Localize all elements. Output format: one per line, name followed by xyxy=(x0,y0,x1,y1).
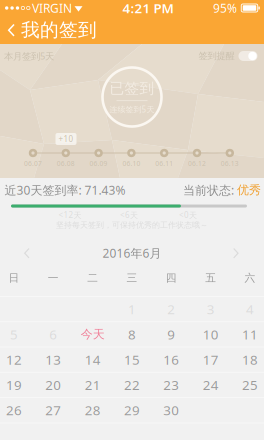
button[interactable]: 9 xyxy=(152,322,191,347)
staticText: 当前状态: xyxy=(183,182,237,198)
button[interactable]: 21 xyxy=(73,372,112,397)
staticText: 21 xyxy=(85,376,101,394)
button[interactable]: 3 xyxy=(191,296,230,321)
staticText: 11 xyxy=(242,325,258,343)
staticText: 06.07 xyxy=(24,159,42,168)
staticText: 22 xyxy=(124,376,140,394)
staticText: 三 xyxy=(126,271,137,284)
staticText: 六 xyxy=(244,271,255,284)
staticText: 近30天签到率: 71.43% xyxy=(4,182,125,198)
button[interactable]: 23 xyxy=(152,372,191,397)
staticText: 8 xyxy=(128,325,136,343)
button[interactable]: 30 xyxy=(152,398,191,423)
button[interactable]: 26 xyxy=(0,398,33,423)
staticText: <12天 xyxy=(58,210,81,220)
staticText: 06.13 xyxy=(221,159,239,168)
staticText: 10 xyxy=(203,325,219,343)
staticText: 2016年6月 xyxy=(102,245,161,261)
staticText: 5 xyxy=(10,325,18,343)
staticText: 连续签到5天 xyxy=(109,104,154,115)
button[interactable]: 4 xyxy=(230,296,264,321)
button[interactable]: 25 xyxy=(230,372,264,397)
staticText: 18 xyxy=(242,351,258,368)
staticText: 06.09 xyxy=(90,159,108,168)
button[interactable]: 今天 xyxy=(73,322,112,347)
staticText: 13 xyxy=(45,351,61,368)
button[interactable]: 27 xyxy=(34,398,73,423)
button[interactable]: 签到提醒 xyxy=(198,50,257,62)
staticText: 16 xyxy=(163,351,179,368)
staticText: +10 xyxy=(58,134,73,144)
staticText: 2 xyxy=(167,300,175,318)
button[interactable]: 13 xyxy=(34,347,73,372)
staticText: <6天 xyxy=(120,210,138,220)
button[interactable]: 12 xyxy=(0,347,33,372)
staticText: 06.12 xyxy=(188,159,206,168)
staticText: 06.11 xyxy=(155,159,173,168)
button[interactable]: 8 xyxy=(112,322,151,347)
button[interactable]: 已签到 xyxy=(101,66,163,128)
staticText: 19 xyxy=(6,376,22,394)
button[interactable]: 17 xyxy=(191,347,230,372)
staticText: 今天 xyxy=(81,327,105,342)
staticText: 一 xyxy=(48,271,59,284)
staticText: 坚持每天签到，可保持优秀的工作状态哦～ xyxy=(56,220,208,230)
staticText: 四 xyxy=(166,271,177,284)
staticText: 本月签到5天 xyxy=(4,50,54,62)
button[interactable]: 18 xyxy=(230,347,264,372)
staticText: 1 xyxy=(128,300,136,318)
button[interactable]: 24 xyxy=(191,372,230,397)
button[interactable]: 20 xyxy=(34,372,73,397)
staticText: 28 xyxy=(85,401,101,419)
staticText: 27 xyxy=(45,401,61,419)
button[interactable]: 28 xyxy=(73,398,112,423)
staticText: 签到提醒 xyxy=(198,50,234,62)
staticText: 06.08 xyxy=(57,159,75,168)
button[interactable]: 我的签到 xyxy=(0,16,107,44)
staticText: 24 xyxy=(203,376,219,394)
staticText: 23 xyxy=(163,376,179,394)
staticText: 4:21 PM xyxy=(122,0,173,17)
staticText: 12 xyxy=(6,351,22,368)
staticText: VIRGIN xyxy=(32,0,72,16)
staticText: 25 xyxy=(242,376,258,394)
staticText: 日 xyxy=(8,271,19,284)
button[interactable]: 11 xyxy=(230,322,264,347)
button[interactable]: 14 xyxy=(73,347,112,372)
staticText: <0天 xyxy=(179,210,197,220)
button[interactable]: 10 xyxy=(191,322,230,347)
button[interactable]: 22 xyxy=(112,372,151,397)
staticText: 我的签到 xyxy=(21,18,97,41)
button[interactable]: 19 xyxy=(0,372,33,397)
staticText: 17 xyxy=(203,351,219,368)
staticText: 9 xyxy=(167,325,175,343)
staticText: 30 xyxy=(163,401,179,419)
staticText: 二 xyxy=(87,271,98,284)
staticText: 15 xyxy=(124,351,140,368)
staticText: 已签到 xyxy=(109,79,154,97)
staticText: 29 xyxy=(124,401,140,419)
staticText: 14 xyxy=(85,351,101,368)
staticText: 26 xyxy=(6,401,22,419)
staticText: 06.10 xyxy=(122,159,140,168)
staticText: 6 xyxy=(49,325,57,343)
staticText: 4 xyxy=(246,300,254,318)
staticText: 95% xyxy=(213,0,237,16)
button[interactable]: 15 xyxy=(112,347,151,372)
staticText: 优秀 xyxy=(237,183,261,197)
staticText: 20 xyxy=(45,376,61,394)
button[interactable]: 16 xyxy=(152,347,191,372)
staticText: 五 xyxy=(205,271,216,284)
button[interactable]: 29 xyxy=(112,398,151,423)
